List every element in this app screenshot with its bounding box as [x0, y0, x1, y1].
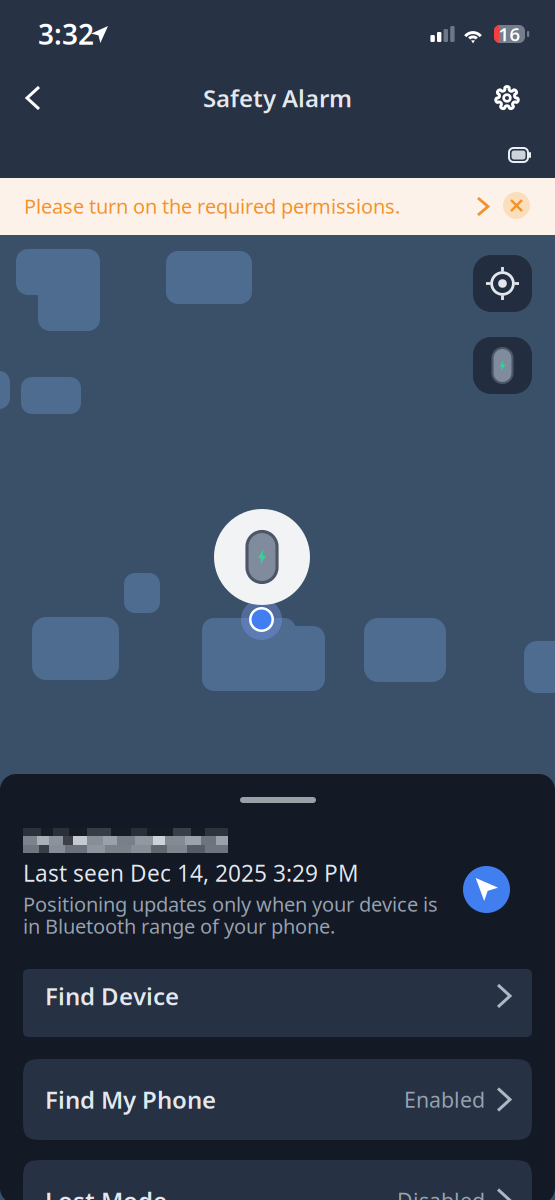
- staticText: Lost Mode: [45, 1185, 167, 1200]
- button[interactable]: Navigate to device: [463, 866, 510, 913]
- staticText: Positioning updates only when your devic…: [23, 891, 438, 917]
- staticText: Find My Phone: [45, 1084, 216, 1115]
- button[interactable]: Find My Phone: [23, 1059, 532, 1140]
- staticText: 3:32: [38, 15, 94, 53]
- staticText: in Bluetooth range of your phone.: [23, 913, 335, 939]
- button[interactable]: Settings: [485, 76, 529, 120]
- staticText: Enabled: [404, 1085, 485, 1114]
- staticText: Please turn on the required permissions.: [24, 193, 400, 219]
- button[interactable]: Lost Mode: [23, 1160, 532, 1200]
- staticText: Disabled: [397, 1186, 485, 1200]
- button[interactable]: Find Device: [23, 969, 532, 1037]
- staticText: Find Device: [45, 980, 179, 1012]
- button[interactable]: Please turn on the required permissions.: [0, 178, 555, 235]
- button[interactable]: Back: [11, 76, 55, 120]
- staticText: 16: [498, 22, 520, 46]
- button[interactable]: Center on my location: [473, 255, 532, 312]
- staticText: Last seen Dec 14, 2025 3:29 PM: [23, 858, 359, 888]
- button[interactable]: Center on device: [473, 337, 532, 394]
- staticText: Safety Alarm: [203, 82, 352, 114]
